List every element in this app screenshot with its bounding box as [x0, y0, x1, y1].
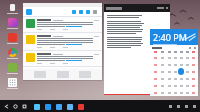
button[interactable]: App	[43, 102, 52, 111]
button[interactable]	[159, 82, 166, 89]
button[interactable]: Chrome	[2, 47, 22, 59]
button[interactable]	[178, 68, 184, 75]
button[interactable]	[172, 54, 178, 61]
button[interactable]: Instagram	[2, 17, 22, 29]
button[interactable]	[166, 54, 172, 61]
button[interactable]	[172, 89, 178, 96]
button[interactable]	[184, 68, 190, 75]
button[interactable]: Home	[11, 102, 20, 111]
button[interactable]	[152, 82, 159, 89]
button[interactable]	[152, 89, 159, 96]
button[interactable]	[178, 54, 184, 61]
button[interactable]	[184, 75, 190, 82]
button[interactable]	[190, 89, 196, 96]
button[interactable]	[190, 82, 196, 89]
button[interactable]	[178, 61, 184, 68]
button[interactable]	[178, 89, 184, 96]
button[interactable]: All apps	[2, 77, 22, 89]
button[interactable]	[184, 61, 190, 68]
button[interactable]	[159, 89, 166, 96]
button[interactable]: Clock	[150, 29, 198, 45]
button[interactable]	[190, 54, 196, 61]
button[interactable]: Action 2	[85, 9, 91, 15]
button[interactable]	[172, 68, 178, 75]
button[interactable]	[178, 75, 184, 82]
button[interactable]	[152, 61, 159, 68]
button[interactable]: Action 3	[92, 9, 98, 15]
button[interactable]	[184, 89, 190, 96]
button[interactable]	[190, 61, 196, 68]
button[interactable]	[184, 82, 190, 89]
button[interactable]	[152, 75, 159, 82]
button[interactable]: Tray icon	[174, 102, 182, 110]
button[interactable]	[159, 75, 166, 82]
button[interactable]: App	[65, 102, 74, 111]
button[interactable]	[190, 75, 196, 82]
button[interactable]: Back	[2, 102, 11, 111]
button[interactable]	[159, 68, 166, 75]
button[interactable]	[172, 82, 178, 89]
button[interactable]: Trash	[2, 2, 22, 14]
button[interactable]	[166, 68, 172, 75]
button[interactable]	[166, 89, 172, 96]
button[interactable]: Action 0	[71, 9, 77, 15]
button[interactable]	[172, 75, 178, 82]
button[interactable]	[159, 54, 166, 61]
button[interactable]: Action 1	[78, 9, 84, 15]
button[interactable]: Tray icon	[182, 102, 190, 110]
button[interactable]	[172, 61, 178, 68]
button[interactable]	[166, 82, 172, 89]
button[interactable]: App	[2, 62, 22, 74]
button[interactable]	[152, 54, 159, 61]
button[interactable]: App	[32, 102, 41, 111]
button[interactable]	[166, 75, 172, 82]
button[interactable]	[184, 54, 190, 61]
button[interactable]: App	[2, 32, 22, 44]
button[interactable]	[178, 82, 184, 89]
button[interactable]	[152, 68, 159, 75]
button[interactable]: App	[76, 102, 85, 111]
button[interactable]: Recents	[20, 102, 29, 111]
button[interactable]: Twitter	[26, 9, 32, 15]
button[interactable]: Tray icon	[190, 102, 198, 110]
button[interactable]	[166, 61, 172, 68]
button[interactable]: App	[54, 102, 63, 111]
button[interactable]: Tray icon	[166, 102, 174, 110]
button[interactable]	[190, 68, 196, 75]
staticText: 2:40 PM	[153, 31, 187, 43]
button[interactable]	[159, 61, 166, 68]
